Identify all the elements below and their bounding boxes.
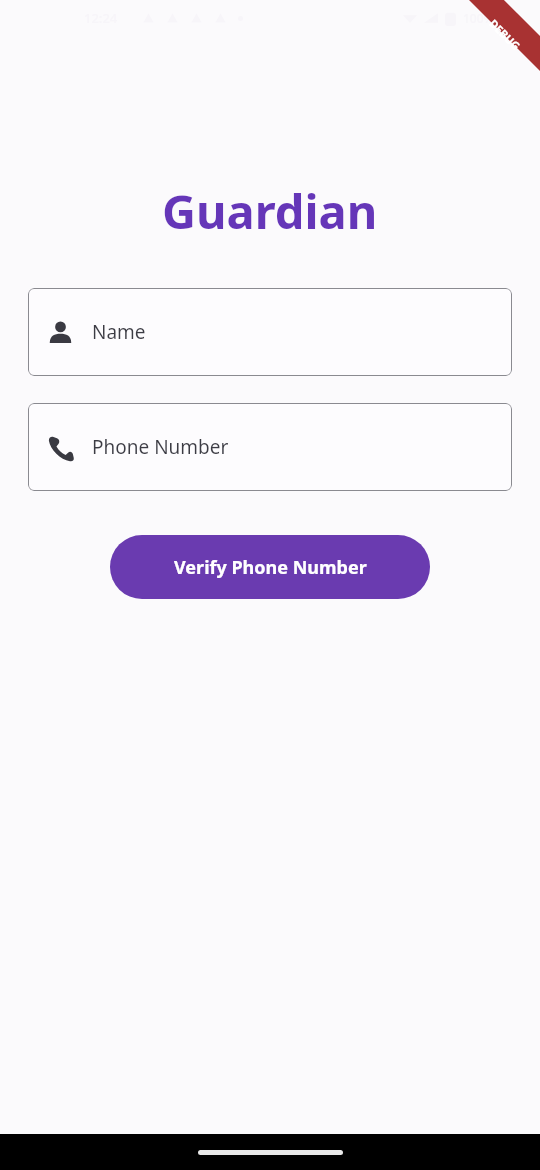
button[interactable]: Name [28,288,512,376]
button[interactable]: Phone Number [28,403,512,491]
staticText: Name [92,319,146,345]
staticText: Guardian [162,179,378,243]
staticText: Verify Phone Number [174,555,367,580]
staticText: 100% [463,10,494,26]
staticText: DEBUG [486,16,524,53]
staticText: Phone Number [92,434,229,460]
button[interactable]: Verify Phone Number [110,535,430,599]
